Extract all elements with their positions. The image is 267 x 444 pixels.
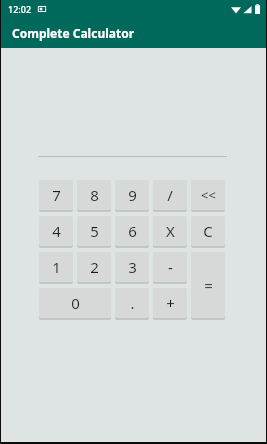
button[interactable]: X [153,216,187,248]
button[interactable]: = [191,252,225,320]
button[interactable]: 9 [115,180,149,212]
staticText: 3 [128,257,137,277]
staticText: = [204,275,213,295]
button[interactable]: + [153,288,187,320]
button[interactable]: . [115,288,149,320]
button[interactable]: Complete Calculator [1,18,266,48]
button[interactable]: 1 [39,252,73,284]
button[interactable]: 4 [39,216,73,248]
staticText: 9 [128,185,137,205]
staticText: 8 [90,185,99,205]
staticText: 2 [90,257,99,277]
staticText: / [167,185,173,205]
button[interactable]: 5 [77,216,111,248]
staticText: 7 [52,185,61,205]
staticText: C [203,221,213,241]
button[interactable]: C [191,216,225,248]
button[interactable]: 7 [39,180,73,212]
staticText: 6 [128,221,137,241]
staticText: X [166,221,175,241]
button[interactable]: 2 [77,252,111,284]
staticText: 1 [52,257,61,277]
button[interactable]: 8 [77,180,111,212]
button[interactable]: / [153,180,187,212]
button[interactable]: - [153,252,187,284]
button[interactable]: 6 [115,216,149,248]
staticText: << [201,186,216,204]
staticText: + [166,293,175,313]
staticText: Complete Calculator [12,25,135,41]
staticText: 4 [52,221,61,241]
staticText: 5 [90,221,99,241]
button[interactable]: 3 [115,252,149,284]
button[interactable]: << [191,180,225,212]
staticText: . [130,293,135,313]
staticText: 12:02 [8,3,32,15]
staticText: 0 [71,293,80,313]
button[interactable]: 0 [39,288,111,320]
staticText: - [168,257,173,277]
